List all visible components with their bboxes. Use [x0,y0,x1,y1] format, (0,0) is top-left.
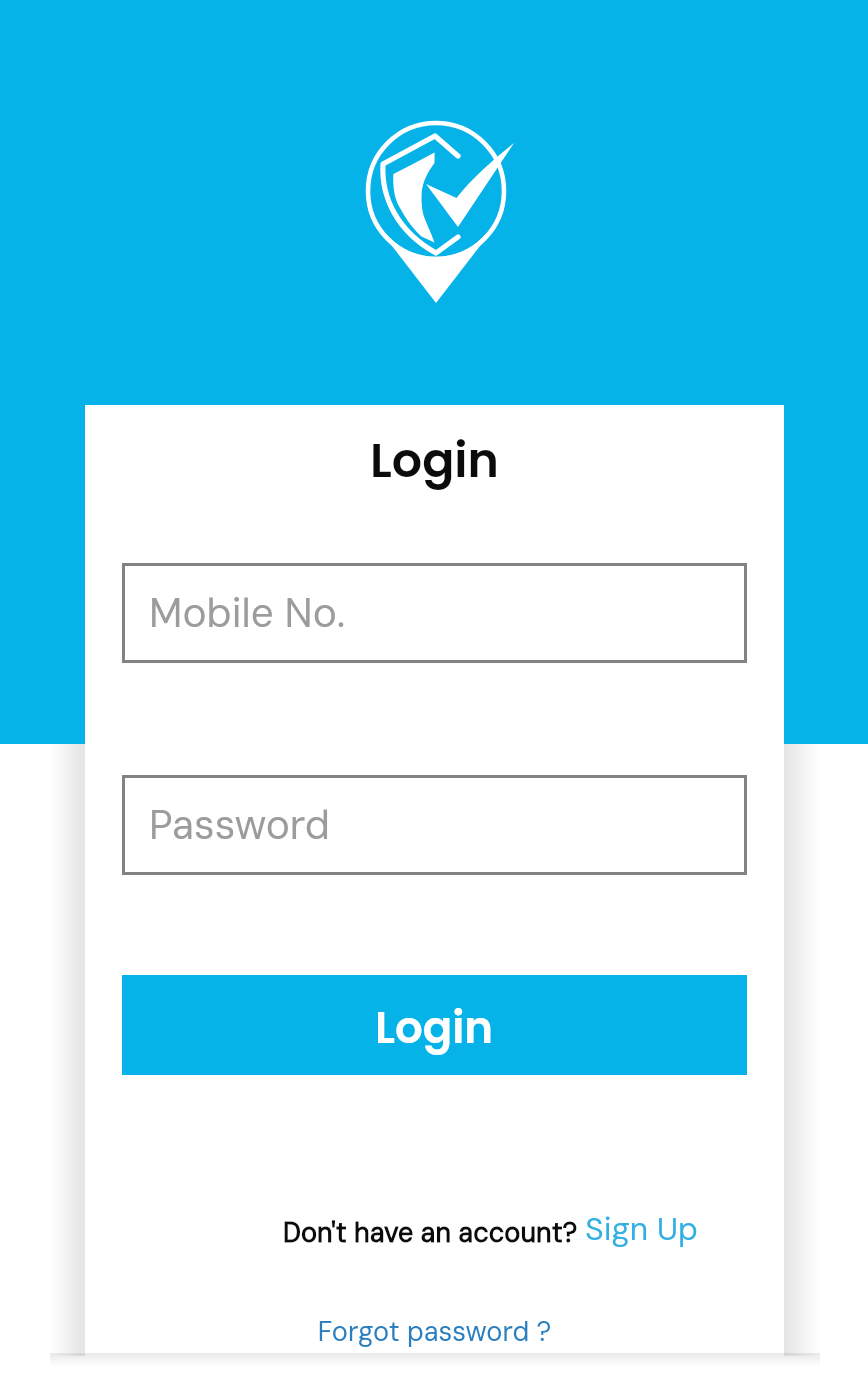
staticText: Forgot password ? [85,1314,784,1349]
staticText: Don't have an account? [283,1215,585,1250]
button[interactable]: Password [122,775,747,875]
button[interactable]: Sign Up [585,1208,698,1250]
button[interactable]: Mobile No. [122,563,747,663]
staticText: Login [375,997,494,1058]
other: App logo [360,118,520,308]
staticText: Password [149,799,330,852]
button[interactable]: Forgot password ? [85,1314,784,1349]
staticText: Mobile No. [149,587,346,640]
staticText: Login [85,427,784,493]
button[interactable]: Login [122,975,747,1075]
